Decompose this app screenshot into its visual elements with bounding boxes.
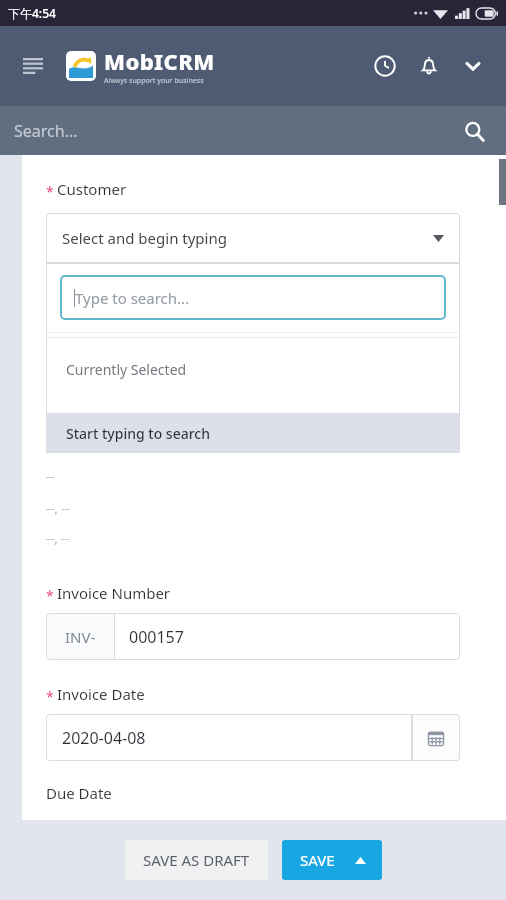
- button[interactable]: Search: [460, 117, 488, 145]
- staticText: 000157: [129, 626, 184, 648]
- button[interactable]: Notifications: [412, 49, 446, 83]
- button[interactable]: Currently Selected: [46, 338, 460, 413]
- button[interactable]: Type to search...: [60, 275, 446, 320]
- staticText: *: [46, 182, 54, 201]
- button[interactable]: Search...: [0, 106, 506, 155]
- button[interactable]: Start typing to search: [46, 413, 460, 453]
- staticText: INV-: [65, 627, 96, 647]
- staticText: Always support your business: [104, 76, 204, 86]
- staticText: Due Date: [46, 783, 112, 803]
- staticText: --, --: [46, 529, 70, 547]
- staticText: *: [46, 586, 54, 605]
- staticText: --, --: [46, 499, 70, 517]
- button[interactable]: Pick date: [412, 714, 460, 761]
- button[interactable]: SAVE AS DRAFT: [125, 840, 268, 880]
- staticText: MobICRM: [104, 46, 215, 76]
- staticText: Invoice Date: [57, 684, 145, 704]
- staticText: Search...: [14, 120, 78, 142]
- staticText: Type to search...: [75, 288, 190, 308]
- button[interactable]: INV-: [46, 613, 460, 660]
- button[interactable]: SAVE: [282, 840, 382, 880]
- staticText: 2020-04-08: [62, 727, 146, 749]
- staticText: Start typing to search: [66, 424, 211, 443]
- staticText: --: [46, 467, 55, 485]
- staticText: Customer: [57, 179, 127, 199]
- staticText: *: [46, 687, 54, 706]
- staticText: Select and begin typing: [62, 228, 227, 248]
- button[interactable]: 2020-04-08: [46, 714, 412, 761]
- staticText: SAVE: [300, 850, 335, 870]
- staticText: SAVE AS DRAFT: [143, 850, 250, 870]
- staticText: Ship to: [46, 429, 95, 449]
- button[interactable]: Menu: [16, 49, 50, 83]
- staticText: 下午4:54: [8, 5, 56, 21]
- staticText: Invoice Number: [57, 583, 171, 603]
- staticText: Currently Selected: [66, 360, 187, 379]
- button[interactable]: More: [456, 49, 490, 83]
- button[interactable]: Select and begin typing: [46, 213, 460, 263]
- button[interactable]: Recent: [368, 49, 402, 83]
